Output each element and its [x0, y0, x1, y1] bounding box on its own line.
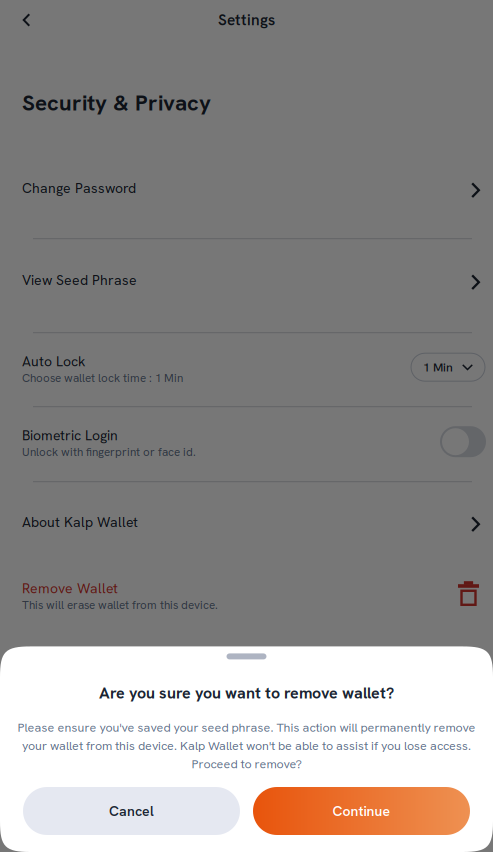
- staticText: Continue: [332, 802, 390, 820]
- staticText: Unlock with fingerprint or face id.: [22, 444, 196, 459]
- button[interactable]: Auto Lock: [0, 333, 493, 406]
- button[interactable]: Back: [0, 0, 53, 40]
- button[interactable]: Biometric Login: [0, 407, 493, 481]
- button[interactable]: Biometric login toggle, off: [440, 426, 486, 457]
- staticText: Change Password: [22, 179, 136, 197]
- button[interactable]: View Seed Phrase: [0, 239, 493, 332]
- button[interactable]: 1 Min: [411, 353, 485, 381]
- staticText: Auto Lock: [22, 352, 85, 370]
- button[interactable]: About Kalp Wallet: [0, 482, 493, 566]
- staticText: Biometric Login: [22, 426, 118, 444]
- staticText: Security & Privacy: [22, 88, 211, 117]
- staticText: View Seed Phrase: [22, 271, 137, 289]
- staticText: Are you sure you want to remove wallet?: [99, 682, 394, 703]
- staticText: 1 Min: [423, 359, 453, 375]
- staticText: Please ensure you've saved your seed phr…: [17, 719, 475, 735]
- staticText: your wallet from this device. Kalp Walle…: [22, 737, 471, 754]
- button[interactable]: Cancel: [23, 787, 240, 835]
- staticText: Choose wallet lock time : 1 Min: [22, 370, 183, 385]
- staticText: Settings: [218, 10, 275, 30]
- button[interactable]: Continue: [253, 787, 470, 835]
- staticText: This will erase wallet from this device.: [22, 597, 218, 612]
- staticText: About Kalp Wallet: [22, 513, 138, 531]
- button[interactable]: Change Password: [0, 153, 493, 238]
- staticText: Cancel: [109, 802, 154, 820]
- staticText: Proceed to remove?: [191, 756, 301, 772]
- staticText: Remove Wallet: [22, 579, 118, 597]
- button[interactable]: Remove Wallet: [0, 566, 493, 629]
